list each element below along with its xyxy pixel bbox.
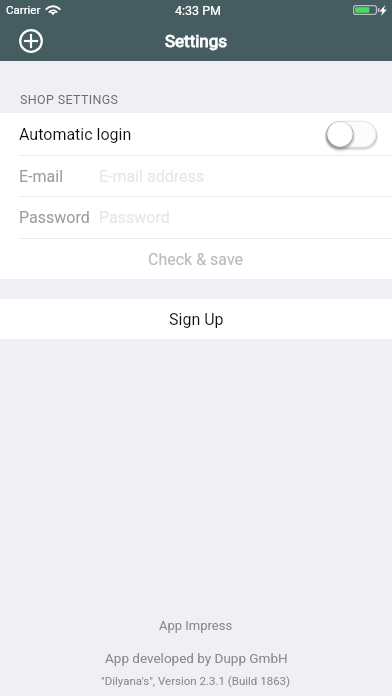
- staticText: Check & save: [148, 250, 244, 269]
- button[interactable]: Check & save: [0, 238, 392, 280]
- button[interactable]: Automatic login toggle: [324, 119, 376, 149]
- button[interactable]: E-mail: [0, 155, 392, 197]
- staticText: App Impress: [159, 618, 233, 633]
- button[interactable]: Add: [14, 24, 48, 58]
- staticText: 4:33 PM: [175, 3, 222, 18]
- staticText: App developed by Dupp GmbH: [105, 650, 288, 666]
- staticText: "Dilyana's", Version 2.3.1 (Build 1863): [101, 674, 291, 687]
- staticText: Automatic login: [19, 125, 132, 144]
- staticText: SHOP SETTINGS: [20, 92, 119, 107]
- staticText: Sign Up: [169, 310, 224, 329]
- staticText: Password: [99, 208, 170, 227]
- staticText: Carrier: [6, 3, 41, 16]
- button[interactable]: Sign Up: [0, 299, 392, 339]
- button[interactable]: Automatic login: [0, 113, 392, 155]
- staticText: E-mail: [19, 167, 64, 186]
- button[interactable]: Password: [0, 196, 392, 238]
- staticText: E-mail address: [99, 167, 205, 186]
- staticText: Password: [19, 208, 90, 227]
- button[interactable]: App Impress: [145, 614, 247, 637]
- staticText: Settings: [165, 31, 228, 51]
